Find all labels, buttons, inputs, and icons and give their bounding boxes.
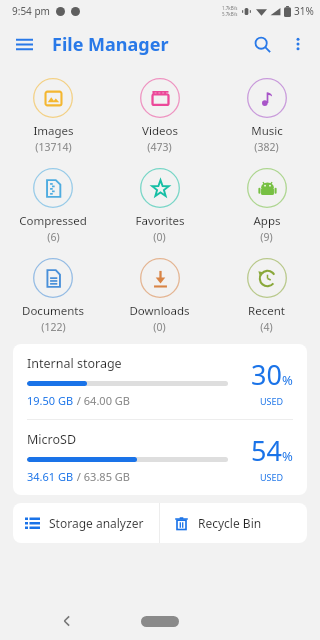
staticText: 1.7kB/s xyxy=(222,5,238,11)
staticText: (13714) xyxy=(35,140,72,154)
staticText: (382) xyxy=(254,140,279,154)
button[interactable]: Images xyxy=(0,76,106,156)
staticText: 5.7kB/s xyxy=(222,11,238,17)
staticText: 31% xyxy=(294,4,314,18)
staticText: / 64.00 GB xyxy=(74,393,130,408)
button[interactable]: Menu xyxy=(6,26,42,62)
staticText: (122) xyxy=(41,320,66,334)
staticText: Internal storage xyxy=(27,355,122,372)
staticText: 9:54 pm xyxy=(12,4,50,18)
button[interactable]: Home xyxy=(141,616,179,627)
staticText: MicroSD xyxy=(27,431,77,448)
staticText: Apps xyxy=(253,213,281,229)
staticText: (0) xyxy=(153,230,166,244)
staticText: Recent xyxy=(248,303,285,319)
staticText: Downloads xyxy=(129,303,190,319)
button[interactable]: Back xyxy=(52,606,82,636)
staticText: Compressed xyxy=(19,213,87,229)
button[interactable]: Apps xyxy=(213,166,320,246)
staticText: 34.61 GB xyxy=(27,469,74,484)
staticText: (0) xyxy=(153,320,166,334)
staticText: / 63.85 GB xyxy=(74,469,130,484)
staticText: File Manager xyxy=(52,32,169,57)
staticText: Music xyxy=(251,123,283,139)
staticText: (473) xyxy=(147,140,172,154)
button[interactable]: Search xyxy=(244,26,280,62)
button[interactable]: Recycle Bin xyxy=(160,503,307,543)
staticText: USED xyxy=(260,395,284,407)
staticText: Storage analyzer xyxy=(49,515,144,531)
staticText: 54 xyxy=(251,432,282,469)
staticText: USED xyxy=(260,471,284,483)
staticText: 19.50 GB xyxy=(27,393,74,408)
button[interactable]: Videos xyxy=(106,76,213,156)
button[interactable]: Storage analyzer xyxy=(13,503,159,543)
button[interactable]: Compressed xyxy=(0,166,106,246)
button[interactable]: Music xyxy=(213,76,320,156)
staticText: % xyxy=(282,371,293,389)
staticText: Documents xyxy=(22,303,84,319)
button[interactable]: Internal storage xyxy=(13,344,307,419)
staticText: 30 xyxy=(251,356,282,393)
button[interactable]: Favorites xyxy=(106,166,213,246)
button[interactable]: Documents xyxy=(0,256,106,336)
staticText: Recycle Bin xyxy=(198,515,262,531)
staticText: % xyxy=(282,447,293,465)
staticText: Images xyxy=(33,123,74,139)
button[interactable]: Downloads xyxy=(106,256,213,336)
staticText: Videos xyxy=(142,123,178,139)
staticText: (4) xyxy=(260,320,273,334)
staticText: (9) xyxy=(260,230,273,244)
button[interactable]: Recent xyxy=(213,256,320,336)
button[interactable]: More options xyxy=(280,26,316,62)
staticText: (6) xyxy=(47,230,60,244)
button[interactable]: MicroSD xyxy=(13,420,307,495)
staticText: Favorites xyxy=(135,213,185,229)
